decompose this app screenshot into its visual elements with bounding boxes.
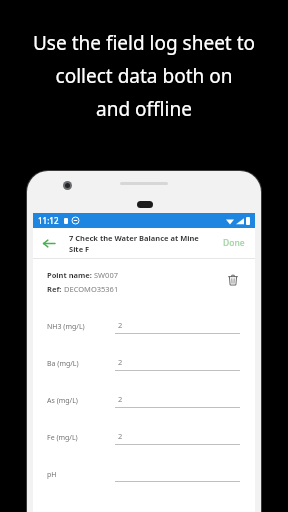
staticText: and offline — [10, 96, 278, 122]
button[interactable]: As (mg/L) — [33, 382, 255, 419]
staticText: NH3 (mg/L) — [47, 322, 85, 332]
button[interactable]: Done — [223, 237, 245, 249]
staticText: 7 Check the Water Balance at Mine — [69, 233, 199, 243]
button[interactable]: Fe (mg/L) — [33, 419, 255, 456]
staticText: Use the field log sheet to — [10, 30, 278, 56]
button[interactable]: NH3 (mg/L) — [33, 308, 255, 345]
staticText: Point name: — [47, 270, 94, 280]
button[interactable]: Back — [33, 228, 63, 258]
staticText: Site F — [69, 244, 90, 254]
staticText: Ba (mg/L) — [47, 359, 79, 369]
button[interactable]: pH — [33, 456, 255, 493]
staticText: Done — [223, 237, 245, 249]
staticText: 11:12 — [38, 215, 59, 226]
staticText: Ref: — [47, 284, 64, 294]
staticText: 2 — [118, 357, 123, 367]
staticText: SW007 — [94, 270, 118, 280]
staticText: collect data both on — [10, 63, 278, 89]
staticText: 2 — [118, 431, 123, 441]
staticText: DECOMO35361 — [64, 284, 119, 294]
staticText: 2 — [118, 320, 123, 330]
staticText: As (mg/L) — [47, 396, 78, 406]
staticText: pH — [47, 470, 57, 480]
button[interactable]: Ba (mg/L) — [33, 345, 255, 382]
button[interactable]: Delete — [223, 270, 243, 290]
staticText: 2 — [118, 394, 123, 404]
staticText: Fe (mg/L) — [47, 433, 78, 443]
